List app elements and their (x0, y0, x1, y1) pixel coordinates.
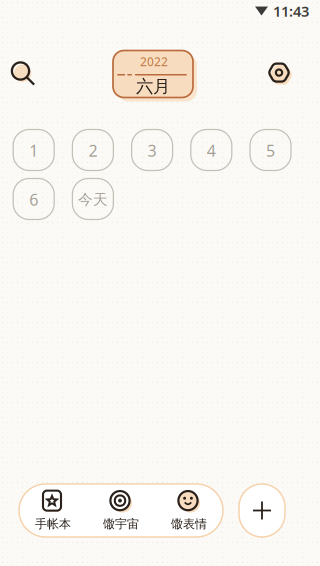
button[interactable]: Add (239, 484, 285, 537)
staticText: 4 (207, 140, 216, 161)
button[interactable]: 馓宇宙 (87, 484, 155, 537)
button[interactable]: 5 (250, 129, 291, 170)
staticText: 3 (148, 140, 157, 161)
button[interactable]: 今天 (72, 178, 113, 219)
staticText: 馓表情 (171, 517, 207, 531)
button[interactable]: 1 (13, 129, 54, 170)
button[interactable]: Search (4, 55, 36, 87)
button[interactable]: 2022 (111, 48, 195, 99)
staticText: 今天 (78, 190, 108, 208)
staticText: 2 (88, 140, 97, 161)
staticText: 六月 (136, 76, 170, 97)
staticText: 1 (29, 140, 38, 161)
button[interactable]: 3 (132, 129, 173, 170)
staticText: 6 (29, 189, 38, 210)
staticText: 5 (266, 140, 275, 161)
staticText: 2022 (140, 53, 168, 69)
button[interactable]: 6 (13, 178, 54, 219)
button[interactable]: 馓表情 (155, 484, 223, 537)
button[interactable]: 手帐本 (19, 484, 87, 537)
button[interactable]: Settings (265, 59, 293, 87)
staticText: 手帐本 (35, 517, 71, 531)
button[interactable]: 2 (72, 129, 113, 170)
staticText: 馓宇宙 (103, 517, 139, 531)
button[interactable]: 4 (191, 129, 232, 170)
staticText: 11:43 (273, 1, 309, 21)
